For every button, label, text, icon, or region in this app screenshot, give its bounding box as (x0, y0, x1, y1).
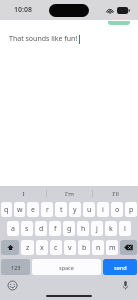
staticText: q (4, 205, 9, 215)
button[interactable]: x (36, 240, 48, 255)
staticText: t (60, 205, 63, 215)
staticText: k (109, 224, 113, 234)
staticText: j (96, 224, 98, 234)
button[interactable]: v (64, 240, 76, 255)
button[interactable]: Backspace (120, 240, 137, 255)
staticText: b (82, 243, 87, 253)
staticText: g (67, 224, 72, 234)
button[interactable]: b (78, 240, 90, 255)
button[interactable]: k (105, 221, 117, 236)
button[interactable]: l (119, 221, 131, 236)
staticText: i (102, 205, 104, 215)
staticText: x (40, 243, 44, 253)
staticText: n (96, 243, 101, 253)
button[interactable]: send (103, 259, 137, 275)
button[interactable]: c (50, 240, 62, 255)
staticText: space (59, 264, 74, 271)
staticText: send (114, 264, 127, 271)
button[interactable]: j (91, 221, 103, 236)
button[interactable]: I (0, 186, 46, 201)
staticText: o (115, 205, 120, 215)
button[interactable]: e (27, 202, 39, 217)
staticText: m (109, 243, 116, 253)
button[interactable]: I'll (93, 186, 138, 201)
staticText: I (22, 190, 25, 198)
staticText: v (68, 243, 72, 253)
staticText: 123 (11, 264, 21, 271)
staticText: 10:08 (14, 5, 32, 15)
staticText: That sounds like fun! (9, 34, 78, 44)
button[interactable]: n (92, 240, 104, 255)
button[interactable]: q (1, 202, 12, 217)
staticText: h (81, 224, 86, 234)
staticText: I'll (112, 190, 119, 198)
button[interactable]: p (125, 202, 137, 217)
button[interactable]: g (63, 221, 75, 236)
button[interactable]: m (106, 240, 118, 255)
staticText: u (87, 205, 92, 215)
staticText: s (25, 224, 29, 234)
button[interactable]: r (41, 202, 53, 217)
button[interactable]: s (21, 221, 33, 236)
button[interactable]: space (32, 259, 101, 275)
staticText: f (54, 224, 57, 234)
staticText: r (46, 205, 49, 215)
button[interactable]: Dictation (119, 279, 132, 292)
button[interactable]: d (35, 221, 47, 236)
button[interactable]: u (83, 202, 95, 217)
staticText: z (26, 243, 30, 253)
staticText: l (124, 224, 126, 234)
button[interactable]: h (77, 221, 89, 236)
button[interactable]: 123 (1, 259, 30, 275)
button[interactable]: f (49, 221, 61, 236)
staticText: w (17, 205, 23, 215)
button[interactable]: I'm (47, 186, 92, 201)
button[interactable]: t (55, 202, 67, 217)
button[interactable]: i (97, 202, 109, 217)
staticText: y (73, 205, 77, 215)
button[interactable]: w (14, 202, 25, 217)
button[interactable]: y (69, 202, 81, 217)
button[interactable]: Emoji (6, 279, 19, 292)
staticText: e (31, 205, 35, 215)
staticText: p (129, 205, 134, 215)
staticText: I'm (65, 190, 74, 198)
button[interactable]: o (111, 202, 123, 217)
button[interactable]: a (7, 221, 19, 236)
button[interactable]: z (21, 240, 34, 255)
button[interactable]: Shift (1, 240, 19, 255)
staticText: a (11, 224, 15, 234)
staticText: c (54, 243, 58, 253)
staticText: d (39, 224, 44, 234)
